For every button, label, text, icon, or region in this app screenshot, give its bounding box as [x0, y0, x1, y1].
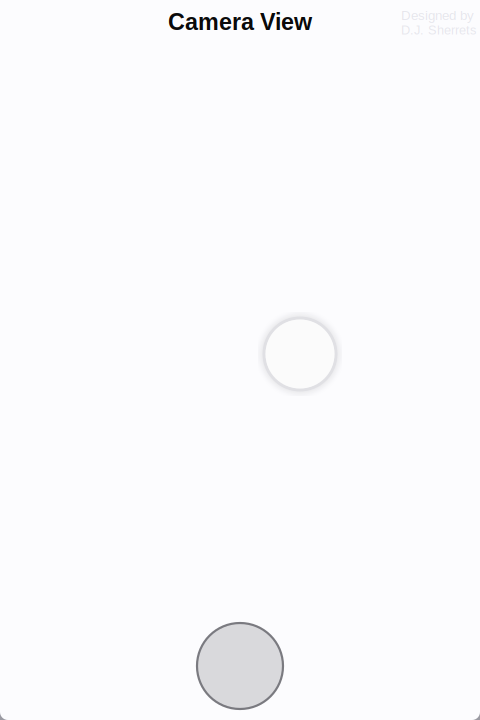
staticText: D.J. Sherrets: [401, 23, 476, 37]
button[interactable]: Focus point: [263, 317, 337, 391]
staticText: Designed by: [401, 8, 474, 23]
button[interactable]: Shutter: [197, 623, 283, 709]
staticText: Camera View: [168, 9, 312, 35]
